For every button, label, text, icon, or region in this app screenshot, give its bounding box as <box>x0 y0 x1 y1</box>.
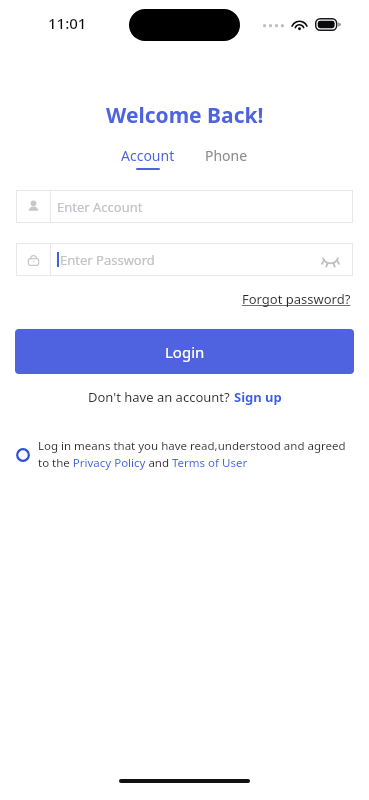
staticText: Forgot password? <box>242 290 351 308</box>
button[interactable]: Agree to terms <box>12 444 34 466</box>
button[interactable]: Sign up <box>234 388 282 406</box>
button[interactable]: Login <box>15 329 354 374</box>
staticText: Login <box>165 342 205 362</box>
staticText: Phone <box>205 146 248 165</box>
button[interactable]: Phone <box>202 146 251 165</box>
staticText: Enter Password <box>60 251 155 269</box>
staticText: Log in means that you have read,understo… <box>38 438 353 471</box>
staticText: Enter Account <box>57 198 143 216</box>
staticText: Don't have an account? <box>88 388 234 406</box>
button[interactable]: Enter Password <box>16 243 353 276</box>
button[interactable]: Show password <box>319 249 341 271</box>
button[interactable]: Forgot password? <box>240 288 353 310</box>
staticText: Account <box>121 146 175 165</box>
button[interactable]: Account <box>118 146 178 170</box>
staticText: Sign up <box>234 388 282 406</box>
staticText: 11:01 <box>48 13 87 33</box>
button[interactable]: Enter Account <box>16 190 353 223</box>
staticText: Welcome Back! <box>106 101 264 130</box>
